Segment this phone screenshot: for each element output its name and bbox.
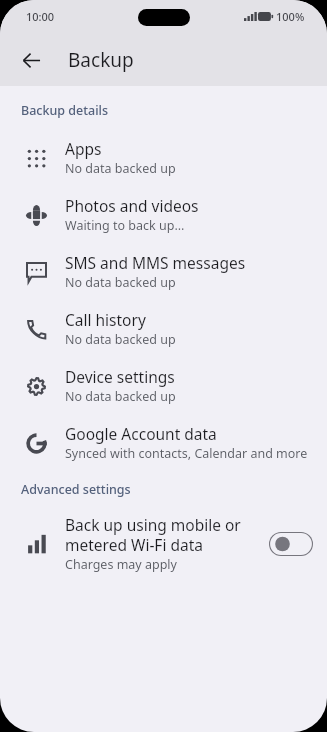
staticText: Back up using mobile or metered Wi-Fi da…	[65, 514, 261, 555]
staticText: Synced with contacts, Calendar and more	[65, 445, 308, 462]
staticText: Waiting to back up…	[65, 217, 185, 234]
staticText: Advanced settings	[21, 481, 131, 498]
button[interactable]: Call history	[0, 300, 327, 357]
staticText: No data backed up	[65, 388, 176, 405]
button[interactable]: Back	[10, 39, 52, 81]
staticText: Charges may apply	[65, 556, 177, 573]
button[interactable]: Photos and videos	[0, 186, 327, 243]
staticText: No data backed up	[65, 160, 176, 177]
staticText: Google Account data	[65, 423, 217, 444]
staticText: No data backed up	[65, 274, 176, 291]
button[interactable]: Device settings	[0, 357, 327, 414]
staticText: Backup details	[21, 102, 108, 119]
button[interactable]: Apps	[0, 129, 327, 186]
staticText: Call history	[65, 309, 146, 330]
staticText: 10:00	[26, 9, 55, 24]
staticText: Device settings	[65, 366, 175, 387]
staticText: Apps	[65, 138, 102, 159]
staticText: Backup	[68, 47, 134, 73]
button[interactable]: Back up using mobile or metered Wi-Fi da…	[269, 532, 313, 556]
button[interactable]: Google Account data	[0, 414, 327, 471]
button[interactable]: Back up using mobile or metered Wi-Fi da…	[0, 506, 327, 581]
staticText: 100%	[276, 9, 305, 24]
staticText: SMS and MMS messages	[65, 252, 246, 273]
button[interactable]: SMS and MMS messages	[0, 243, 327, 300]
staticText: No data backed up	[65, 331, 176, 348]
staticText: Photos and videos	[65, 195, 199, 216]
